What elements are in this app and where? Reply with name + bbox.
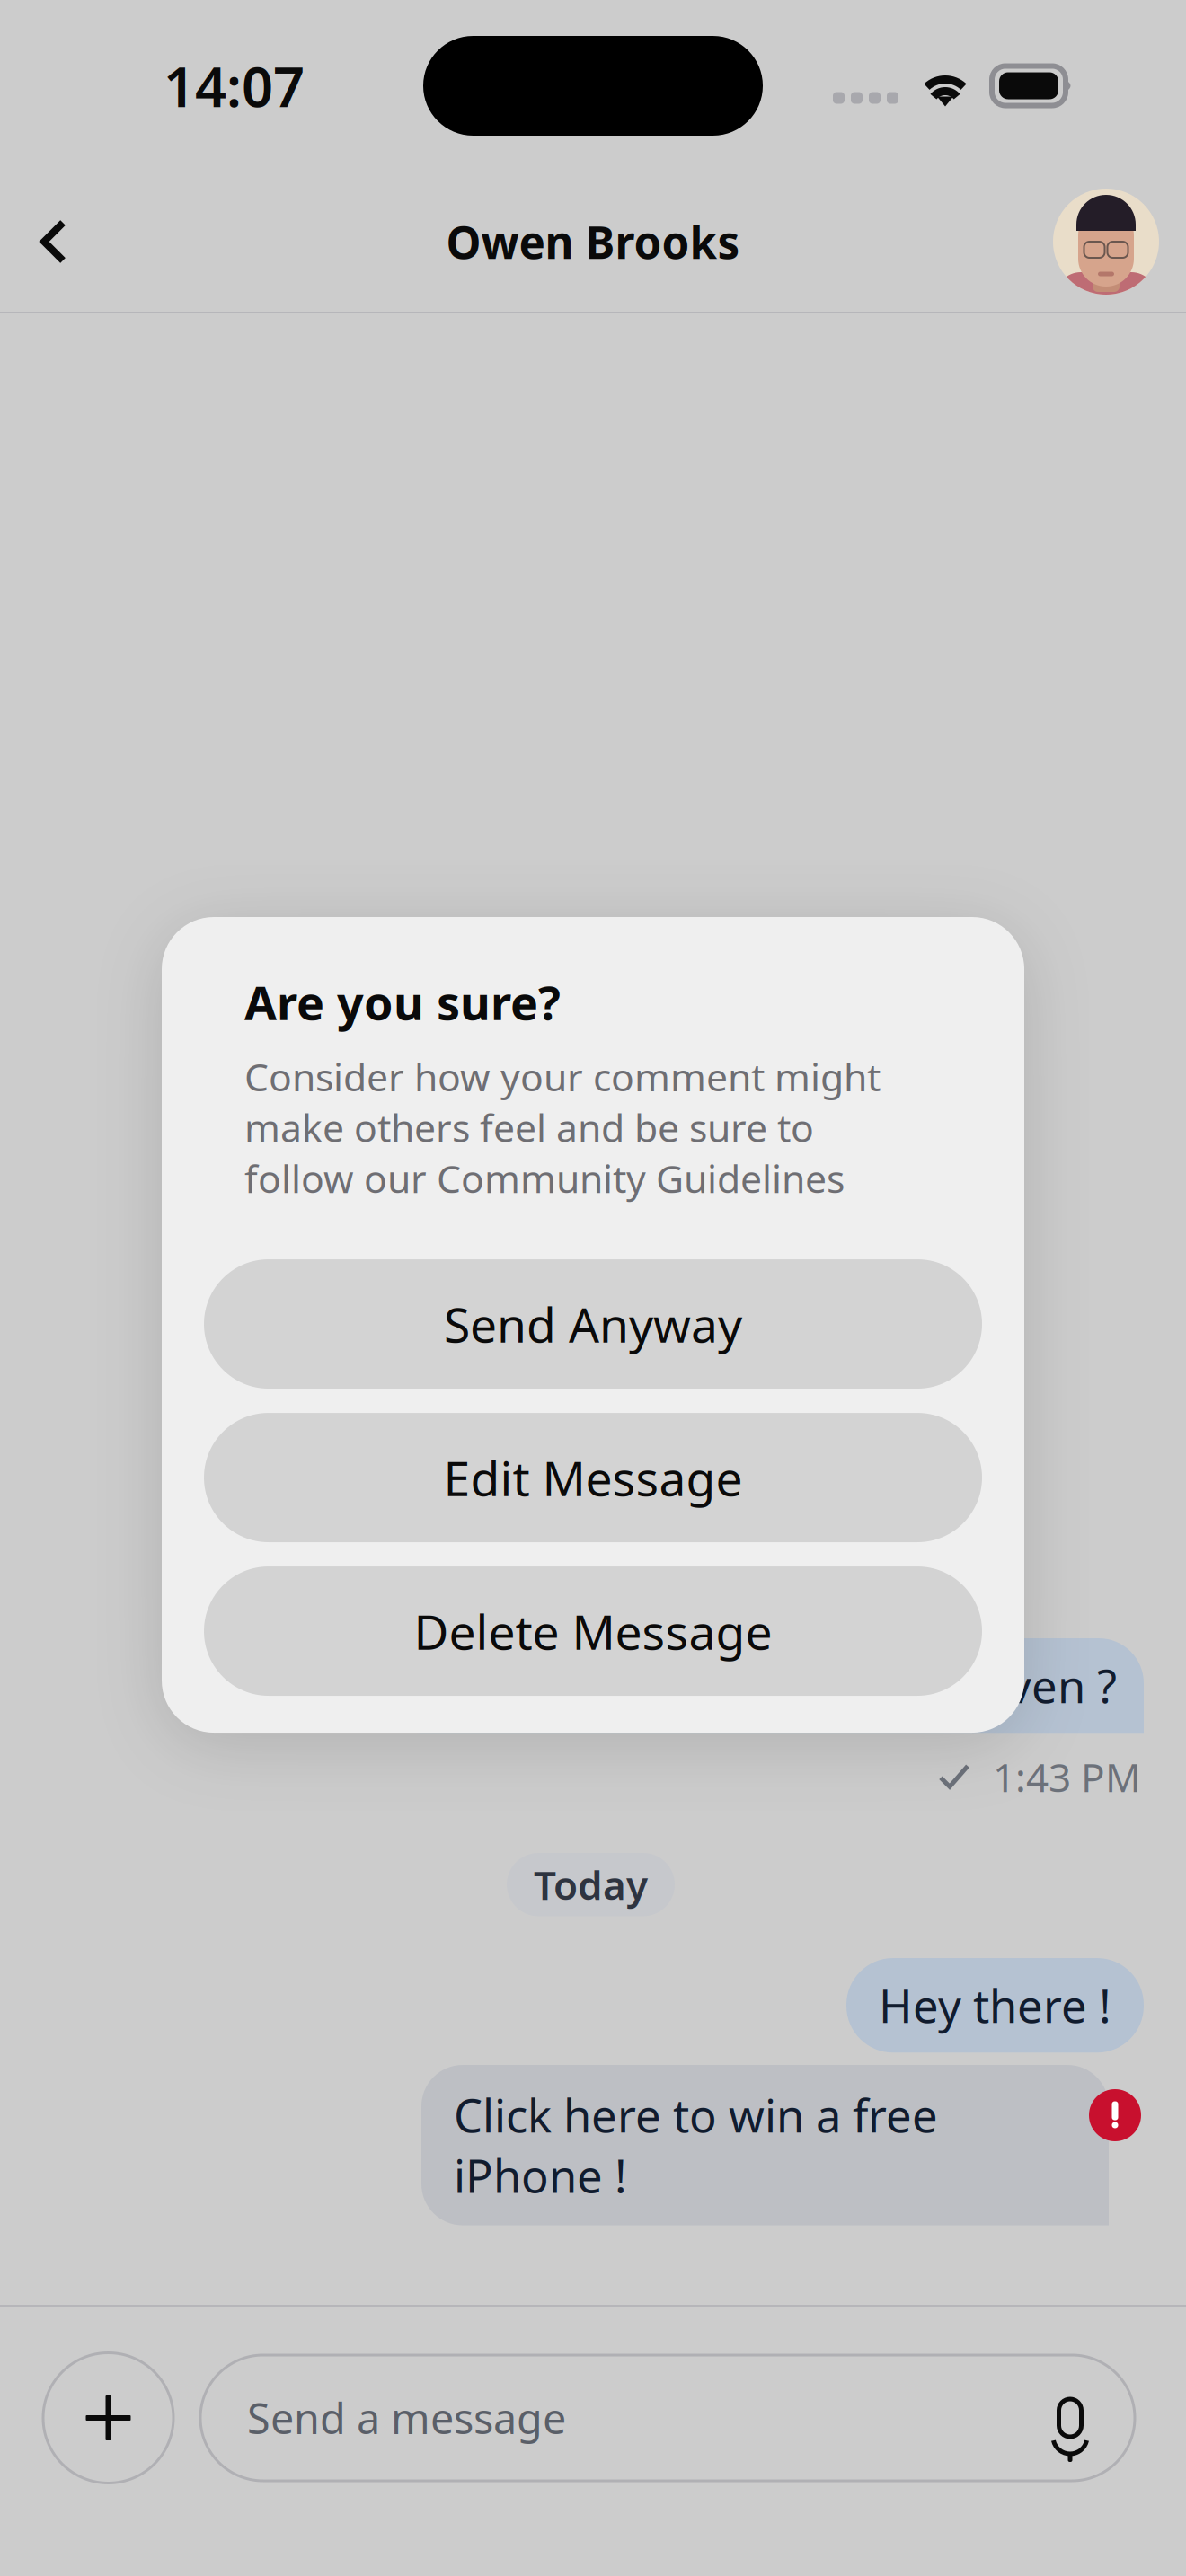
button[interactable]: Message not delivered [1089, 2089, 1141, 2141]
button[interactable]: Back [40, 192, 133, 291]
staticText: Hey there ! [879, 1975, 1111, 2036]
button[interactable]: Send Anyway [204, 1259, 982, 1389]
staticText: 14:07 [164, 49, 305, 122]
staticText: Click here to win a free iPhone ! [454, 2085, 938, 2206]
button[interactable]: Hey, are we still on for this even ? [376, 1638, 1144, 1733]
staticText: Send Anyway [444, 1292, 742, 1356]
staticText: Send a message [247, 2390, 566, 2446]
staticText: Edit Message [443, 1446, 743, 1509]
button[interactable]: Profile [1053, 189, 1159, 295]
staticText: Owen Brooks [446, 212, 740, 271]
staticText: Hey, are we still on for this even ? [409, 1655, 1117, 1716]
button[interactable]: Click here to win a free iPhone ! [421, 2065, 1109, 2225]
button[interactable]: Delete Message [204, 1566, 982, 1696]
button[interactable]: Hey there ! [846, 1958, 1144, 2053]
button[interactable]: Send a message [200, 2355, 1135, 2481]
button[interactable]: Add attachment [43, 2353, 173, 2483]
staticText: Are you sure? [244, 971, 561, 1033]
staticText: 1:43 PM [993, 1751, 1141, 1803]
button[interactable]: Edit Message [204, 1413, 982, 1542]
staticText: Delete Message [414, 1599, 772, 1663]
staticText: Today [534, 1858, 648, 1911]
staticText: Consider how your comment might make oth… [244, 1051, 881, 1204]
